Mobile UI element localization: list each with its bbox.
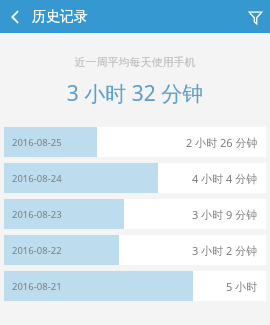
staticText: 4 小时 4 分钟 <box>192 171 258 186</box>
staticText: 2016-08-25 <box>12 136 62 149</box>
staticText: 近一周平均每天使用手机 <box>0 55 270 69</box>
staticText: 5 小时 <box>226 279 258 294</box>
staticText: 2 小时 26 分钟 <box>186 135 258 150</box>
staticText: 2016-08-21 <box>12 280 62 293</box>
staticText: 2016-08-24 <box>12 172 62 185</box>
staticText: 2016-08-23 <box>12 208 62 221</box>
staticText: 3 小时 9 分钟 <box>192 207 258 222</box>
button[interactable]: Filter <box>240 2 270 32</box>
staticText: 3 小时 2 分钟 <box>192 243 258 258</box>
button[interactable]: 2016-08-21 <box>4 271 266 301</box>
button[interactable]: 2016-08-23 <box>4 199 266 229</box>
button[interactable]: 2016-08-25 <box>4 127 266 157</box>
staticText: 2016-08-22 <box>12 244 62 257</box>
staticText: 3 小时 32 分钟 <box>0 79 270 108</box>
staticText: 历史记录 <box>32 8 88 26</box>
button[interactable]: 2016-08-24 <box>4 163 266 193</box>
button[interactable]: 2016-08-22 <box>4 235 266 265</box>
button[interactable]: Back <box>0 2 30 32</box>
